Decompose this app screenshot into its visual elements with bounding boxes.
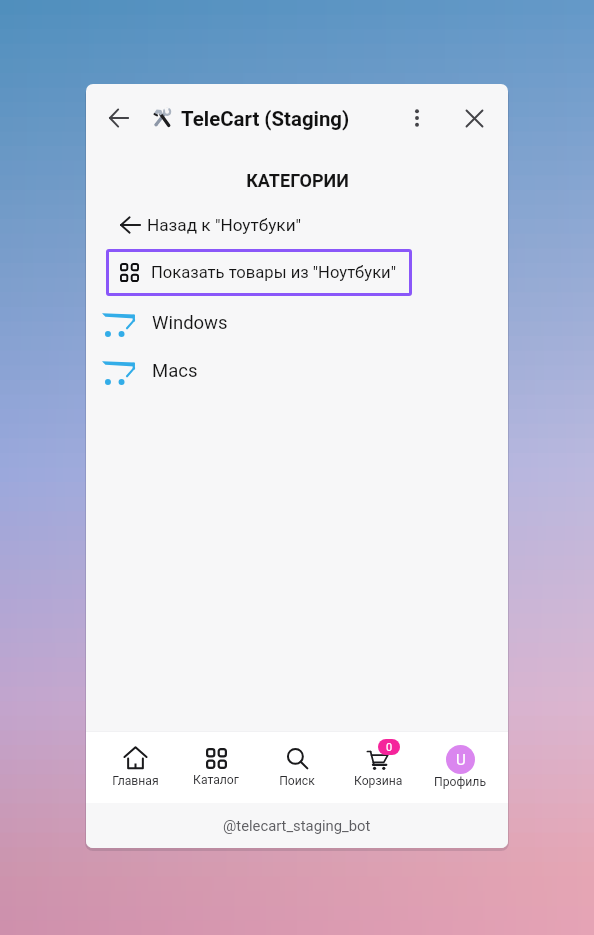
- button[interactable]: More options: [399, 100, 435, 136]
- staticText: Windows: [152, 312, 228, 334]
- staticText: U: [456, 751, 466, 769]
- staticText: Каталог: [193, 773, 239, 787]
- button[interactable]: Macs: [86, 349, 508, 397]
- button[interactable]: Главная: [94, 747, 176, 788]
- button[interactable]: Показать товары из "Ноутбуки": [106, 249, 412, 296]
- staticText: Профиль: [434, 775, 487, 789]
- staticText: Macs: [152, 360, 198, 382]
- staticText: Назад к "Ноутбуки": [147, 215, 302, 235]
- staticText: 0: [386, 741, 393, 754]
- button[interactable]: Поиск: [256, 748, 338, 788]
- button[interactable]: Каталог: [175, 748, 257, 787]
- staticText: Корзина: [354, 774, 403, 788]
- button[interactable]: Back: [101, 100, 137, 136]
- staticText: Показать товары из "Ноутбуки": [151, 263, 397, 282]
- button[interactable]: Назад к "Ноутбуки": [120, 208, 302, 242]
- button[interactable]: Close: [456, 100, 492, 136]
- button[interactable]: U: [419, 745, 501, 789]
- staticText: Главная: [112, 774, 159, 788]
- staticText: Поиск: [279, 774, 315, 788]
- staticText: TeleCart (Staging): [181, 107, 350, 131]
- staticText: @telecart_staging_bot: [223, 817, 371, 834]
- staticText: КАТЕГОРИИ: [246, 170, 349, 191]
- button[interactable]: Windows: [86, 301, 508, 349]
- button[interactable]: 0: [337, 749, 419, 788]
